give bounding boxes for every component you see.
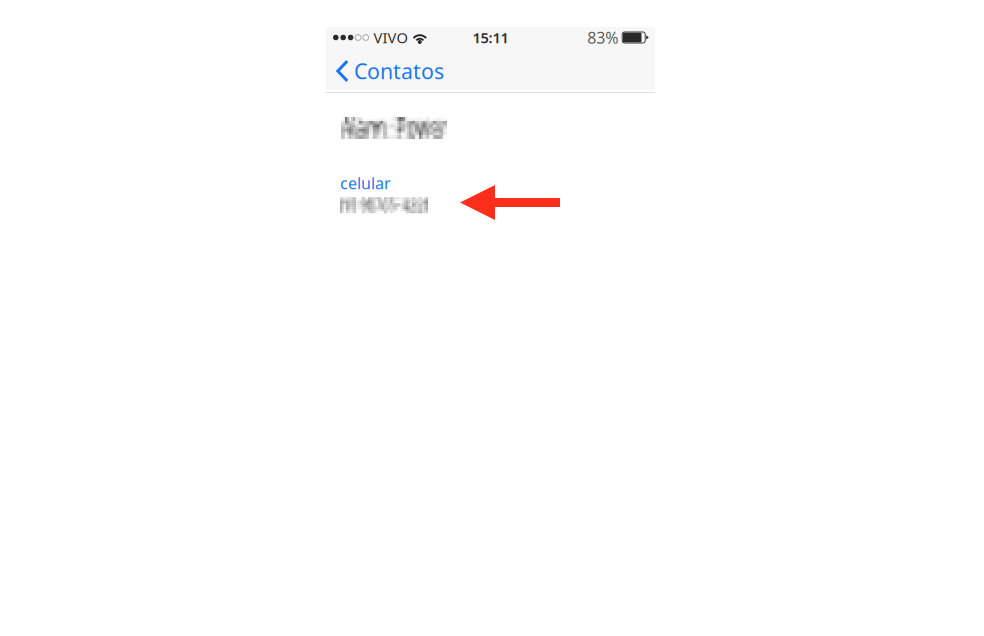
button[interactable]: Contatos [326,45,452,93]
staticText: celular [340,172,391,194]
staticText: 83% [587,27,618,48]
button[interactable]: celular, phone number [326,165,655,222]
staticText: VIVO [374,28,408,47]
staticText: 15:11 [472,28,508,47]
staticText: Contatos [354,57,444,85]
